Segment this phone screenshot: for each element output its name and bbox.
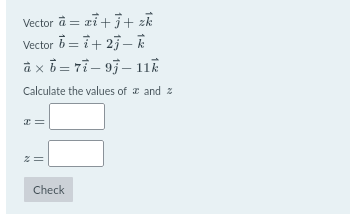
staticText: = bbox=[59, 58, 71, 76]
staticText: i bbox=[92, 12, 97, 30]
staticText: z bbox=[23, 148, 30, 166]
staticText: k bbox=[151, 58, 158, 76]
staticText: b bbox=[49, 58, 56, 76]
staticText: = bbox=[69, 12, 81, 30]
staticText: j bbox=[113, 58, 118, 76]
staticText: Calculate the values of bbox=[23, 85, 127, 98]
staticText: z bbox=[138, 12, 145, 30]
staticText: j bbox=[115, 12, 120, 30]
staticText: i bbox=[82, 58, 87, 76]
staticText: = bbox=[34, 111, 46, 129]
staticText: − bbox=[90, 58, 102, 76]
staticText: 9 bbox=[105, 58, 113, 76]
staticText: j bbox=[114, 34, 119, 52]
staticText: a bbox=[58, 12, 66, 30]
staticText: × bbox=[34, 58, 46, 76]
staticText: x bbox=[132, 81, 139, 98]
staticText: 2 bbox=[106, 34, 114, 52]
staticText: − bbox=[121, 58, 133, 76]
staticText: Vector bbox=[23, 39, 54, 52]
staticText: − bbox=[122, 34, 134, 52]
button[interactable]: Answer input for x bbox=[49, 103, 105, 130]
staticText: 7 bbox=[74, 58, 82, 76]
staticText: x bbox=[84, 12, 92, 30]
staticText: k bbox=[137, 34, 144, 52]
staticText: Vector bbox=[23, 17, 54, 30]
staticText: + bbox=[123, 12, 135, 30]
staticText: a bbox=[23, 58, 31, 76]
staticText: = bbox=[68, 34, 80, 52]
staticText: k bbox=[145, 12, 152, 30]
staticText: 11 bbox=[136, 58, 151, 76]
staticText: x bbox=[23, 111, 31, 129]
staticText: = bbox=[33, 148, 45, 166]
button[interactable]: Answer input for z bbox=[48, 140, 104, 167]
button[interactable]: Check bbox=[24, 177, 73, 202]
staticText: Check bbox=[33, 183, 65, 197]
staticText: b bbox=[58, 34, 65, 52]
staticText: and bbox=[144, 85, 161, 98]
staticText: z bbox=[166, 81, 172, 98]
staticText: + bbox=[100, 12, 112, 30]
staticText: i bbox=[83, 34, 88, 52]
staticText: + bbox=[91, 34, 103, 52]
